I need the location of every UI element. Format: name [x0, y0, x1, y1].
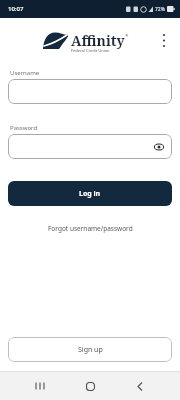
button[interactable]: Log in: [8, 181, 172, 206]
button[interactable]: Forgot username/password: [0, 222, 180, 234]
button[interactable]: [156, 32, 172, 50]
staticText: 72%: [155, 6, 165, 13]
staticText: Password: [10, 124, 38, 132]
staticText: Affinity: [71, 31, 125, 50]
staticText: 10:07: [8, 5, 24, 13]
button[interactable]: [73, 372, 107, 400]
button[interactable]: Sign up: [8, 337, 172, 362]
staticText: Sign up: [78, 345, 103, 355]
staticText: Forgot username/password: [48, 224, 133, 233]
staticText: Username: [10, 69, 40, 77]
staticText: Federal Credit Union: [71, 48, 110, 53]
button[interactable]: [153, 141, 165, 153]
button[interactable]: [123, 372, 157, 400]
button[interactable]: [8, 79, 172, 104]
staticText: ®: [125, 33, 129, 38]
staticText: Log in: [79, 189, 101, 199]
button[interactable]: [8, 134, 172, 159]
button[interactable]: [23, 372, 57, 400]
